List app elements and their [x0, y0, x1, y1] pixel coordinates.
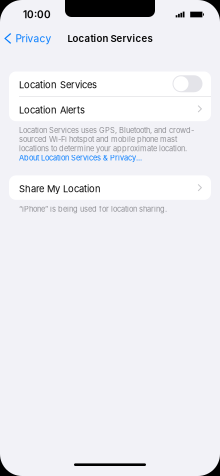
staticText: About Location Services & Privacy...: [19, 153, 142, 162]
button[interactable]: Share My Location: [9, 175, 211, 200]
staticText: sourced Wi-Fi hotspot and mobile phone m…: [19, 135, 177, 144]
button[interactable]: Privacy: [0, 30, 52, 47]
staticText: Privacy: [16, 32, 52, 45]
staticText: 10:00: [23, 8, 51, 21]
staticText: “iPhone” is being used for location shar…: [19, 204, 167, 213]
button[interactable]: Location Alerts: [9, 97, 211, 121]
staticText: Share My Location: [19, 183, 101, 194]
staticText: Location Services uses GPS, Bluetooth, a…: [19, 126, 194, 135]
staticText: Location Services: [19, 79, 97, 91]
button[interactable]: Location Services: [9, 71, 211, 96]
staticText: locations to determine your approximate …: [19, 144, 187, 153]
staticText: Location Alerts: [19, 104, 85, 116]
staticText: Location Services: [67, 33, 152, 44]
button[interactable]: About Location Services & Privacy...: [19, 153, 201, 162]
